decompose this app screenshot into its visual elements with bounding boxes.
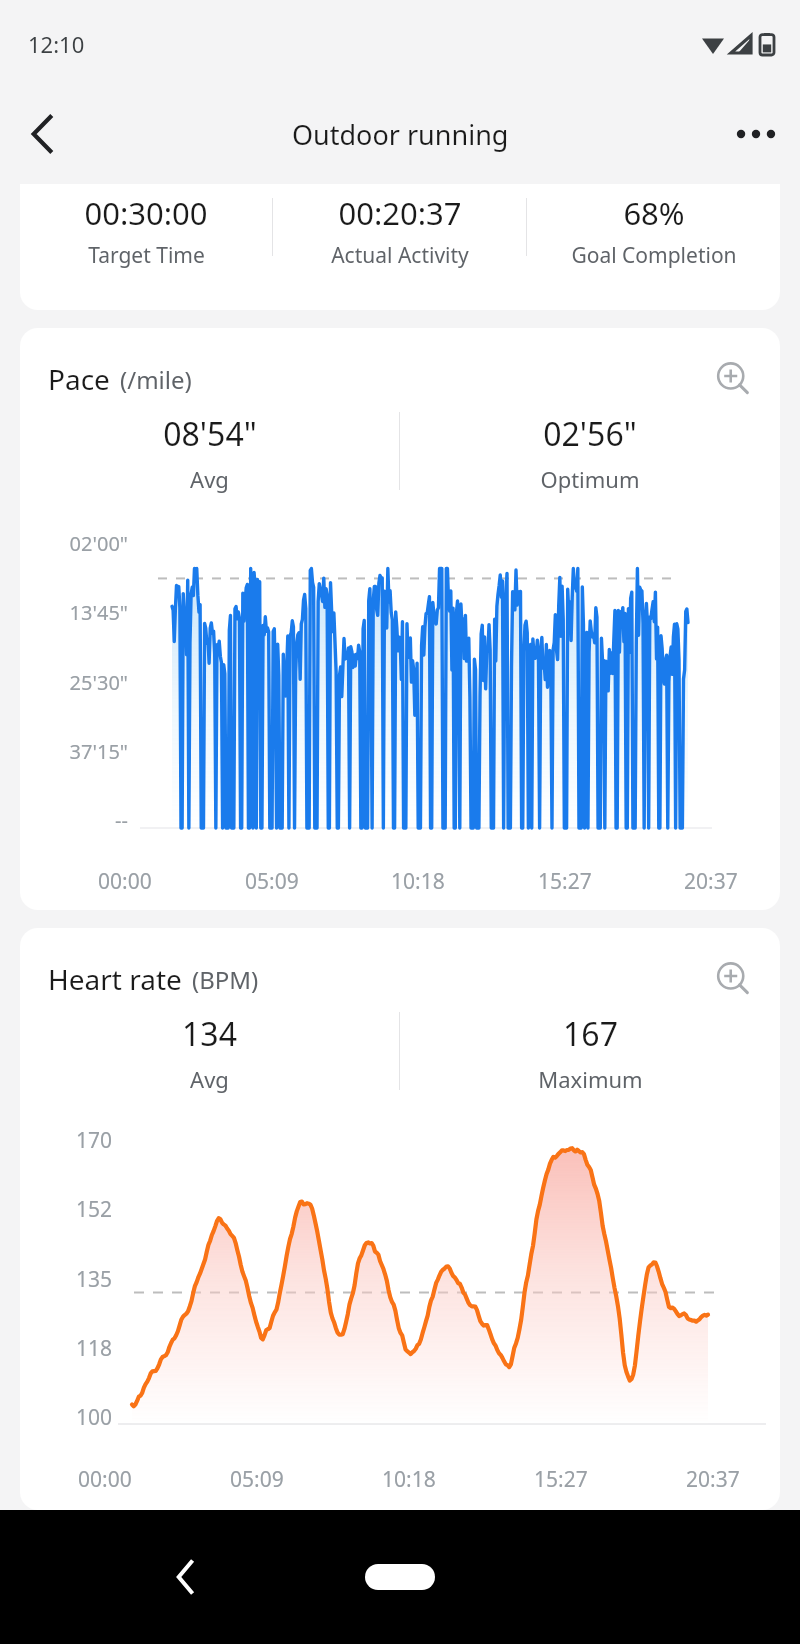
staticText: Optimum <box>540 464 640 494</box>
staticText: Goal Completion <box>571 241 737 270</box>
button[interactable]: More options <box>726 104 786 164</box>
staticText: 05:09 <box>245 867 299 896</box>
staticText: (BPM) <box>192 963 259 996</box>
staticText: 00:00 <box>98 867 152 896</box>
staticText: 134 <box>182 1012 237 1056</box>
staticText: Outdoor running <box>292 116 509 153</box>
staticText: 00:00 <box>78 1465 132 1494</box>
staticText: 02'00" <box>69 530 128 557</box>
staticText: 37'15" <box>69 738 128 765</box>
staticText: Heart rate <box>48 960 182 998</box>
staticText: 08'54" <box>163 412 257 456</box>
staticText: -- <box>115 807 128 834</box>
staticText: 12:10 <box>28 29 85 59</box>
button[interactable]: 68% <box>527 192 780 270</box>
staticText: 05:09 <box>230 1465 284 1494</box>
button[interactable]: 08'54" <box>20 412 399 494</box>
button[interactable]: Home <box>340 1549 460 1605</box>
button[interactable]: Expand Pace chart <box>708 354 758 404</box>
staticText: 02'56" <box>543 412 637 456</box>
staticText: 20:37 <box>686 1465 740 1494</box>
button[interactable]: Back <box>149 1541 221 1613</box>
staticText: 25'30" <box>69 669 128 696</box>
button[interactable]: 00:20:37 <box>273 192 526 270</box>
staticText: Avg <box>190 464 229 494</box>
button[interactable]: Back <box>12 104 72 164</box>
button[interactable]: 167 <box>400 1012 780 1094</box>
staticText: Avg <box>190 1064 229 1094</box>
staticText: 00:30:00 <box>84 192 208 234</box>
button[interactable]: 00:30:00 <box>20 192 272 270</box>
staticText: 15:27 <box>538 867 592 896</box>
button[interactable]: 02'56" <box>400 412 780 494</box>
staticText: Maximum <box>538 1064 643 1094</box>
staticText: (/mile) <box>120 363 192 396</box>
staticText: 135 <box>75 1265 112 1294</box>
staticText: 170 <box>75 1126 112 1155</box>
staticText: 118 <box>75 1334 112 1363</box>
staticText: 10:18 <box>382 1465 436 1494</box>
staticText: 10:18 <box>391 867 445 896</box>
staticText: 20:37 <box>684 867 738 896</box>
staticText: 152 <box>75 1195 112 1224</box>
staticText: 15:27 <box>534 1465 588 1494</box>
staticText: 00:20:37 <box>338 192 462 234</box>
staticText: 68% <box>623 192 685 234</box>
staticText: Target Time <box>88 241 205 270</box>
button[interactable]: Expand Heart rate chart <box>708 954 758 1004</box>
button[interactable]: 134 <box>20 1012 399 1094</box>
staticText: 13'45" <box>69 599 128 626</box>
staticText: 100 <box>75 1403 112 1432</box>
staticText: Pace <box>48 360 110 398</box>
staticText: 167 <box>563 1012 618 1056</box>
staticText: Actual Activity <box>331 241 469 270</box>
